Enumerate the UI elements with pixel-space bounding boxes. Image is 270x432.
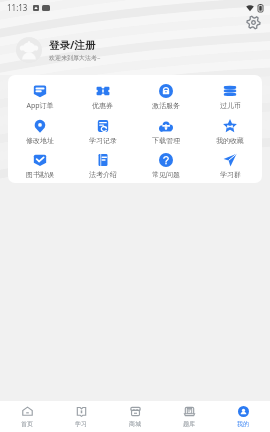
button[interactable]: App订单 [8,84,71,111]
button[interactable]: 我的 [216,401,270,432]
button[interactable]: 首页 [0,401,54,432]
staticText: App订单 [26,101,54,111]
staticText: 登录/注册 [49,38,96,52]
staticText: 题库 [183,420,195,428]
button[interactable]: 法考介绍 [71,153,134,179]
staticText: 修改地址 [26,136,54,145]
button[interactable]: 学习群 [198,153,262,179]
button[interactable]: 常见问题 [134,153,198,179]
staticText: 我的收藏 [216,136,244,145]
button[interactable]: 学习 [54,401,108,432]
staticText: 下载管理 [152,136,180,145]
staticText: 学习 [75,420,87,428]
staticText: 过儿币 [220,101,241,110]
staticText: 优惠券 [92,101,113,110]
button[interactable]: 商城 [108,401,162,432]
staticText: 常见问题 [152,170,180,179]
staticText: 法考介绍 [89,170,117,179]
staticText: 首页 [21,420,33,428]
staticText: 欢迎来到厚大法考~ [49,54,101,62]
button[interactable]: 学习记录 [71,119,134,145]
button[interactable]: 我的收藏 [198,119,262,145]
staticText: 学习群 [220,170,241,179]
staticText: 学习记录 [89,136,117,145]
button[interactable]: 修改地址 [8,119,71,145]
staticText: 商城 [129,420,141,428]
button[interactable]: 下载管理 [134,119,198,145]
staticText: 图书勘误 [26,170,54,179]
button[interactable]: 登录/注册 [16,37,101,63]
button[interactable]: 激活服务 [134,84,198,110]
button[interactable]: 过儿币 [198,84,262,110]
button[interactable]: 优惠券 [71,84,134,110]
button[interactable]: 图书勘误 [8,153,71,179]
staticText: 11:13 [7,2,28,13]
staticText: 我的 [237,420,249,428]
button[interactable]: Settings [247,16,260,29]
button[interactable]: 题库 [162,401,216,432]
staticText: 激活服务 [152,101,180,110]
